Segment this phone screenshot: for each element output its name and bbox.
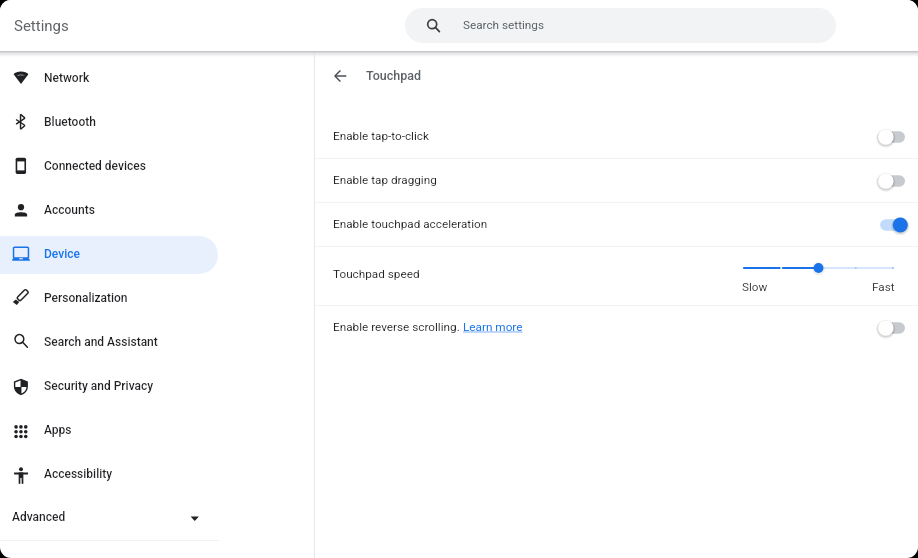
button[interactable]: Accessibility <box>0 451 314 495</box>
button[interactable]: Back <box>318 53 363 99</box>
button[interactable]: Device <box>0 231 314 275</box>
staticText: Advanced <box>12 510 66 524</box>
staticText: Search settings <box>463 18 544 32</box>
button[interactable]: Advanced <box>0 495 219 539</box>
button[interactable]: Search settings <box>405 8 836 43</box>
button[interactable]: Enable reverse scrolling. <box>315 305 918 349</box>
staticText: Apps <box>44 423 72 437</box>
button[interactable]: Enable tap dragging <box>315 158 918 202</box>
staticText: Search and Assistant <box>44 335 158 349</box>
staticText: Slow <box>742 280 768 294</box>
staticText: Enable tap-to-click <box>333 129 429 143</box>
staticText: Enable tap dragging <box>333 173 437 187</box>
staticText: Enable reverse scrolling. <box>333 320 463 334</box>
staticText: Connected devices <box>44 159 146 173</box>
staticText: Network <box>44 71 90 85</box>
button[interactable]: Security and Privacy <box>0 363 314 407</box>
button[interactable]: Connected devices <box>0 143 314 187</box>
staticText: Accessibility <box>44 467 113 481</box>
button[interactable]: Bluetooth <box>0 99 314 143</box>
button[interactable]: Search and Assistant <box>0 319 314 363</box>
staticText: Touchpad speed <box>333 267 420 281</box>
staticText: Bluetooth <box>44 115 96 129</box>
button[interactable]: Touchpad speed <box>736 259 901 277</box>
staticText: Settings <box>14 17 69 35</box>
button[interactable]: Personalization <box>0 275 314 319</box>
button[interactable]: Accounts <box>0 187 314 231</box>
button[interactable]: Enable touchpad acceleration <box>315 202 918 246</box>
staticText: Fast <box>872 280 895 294</box>
button[interactable]: Apps <box>0 407 314 451</box>
button[interactable]: Learn more <box>463 320 523 334</box>
staticText: Security and Privacy <box>44 379 154 393</box>
staticText: Device <box>44 247 80 261</box>
staticText: Personalization <box>44 291 128 305</box>
staticText: Touchpad <box>366 68 422 83</box>
staticText: Accounts <box>44 203 95 217</box>
button[interactable]: Network <box>0 55 314 99</box>
staticText: Enable touchpad acceleration <box>333 217 488 231</box>
button[interactable]: Enable tap-to-click <box>315 114 918 158</box>
